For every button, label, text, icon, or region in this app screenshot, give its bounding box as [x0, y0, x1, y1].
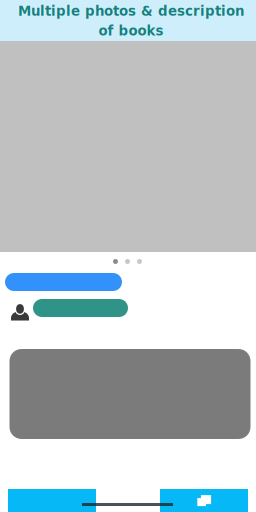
button[interactable]: Duplicate listing: [160, 489, 248, 512]
staticText: Multiple photos & description: [18, 3, 244, 19]
staticText: of books: [98, 23, 163, 38]
button[interactable]: Photo gallery: [8, 489, 96, 512]
